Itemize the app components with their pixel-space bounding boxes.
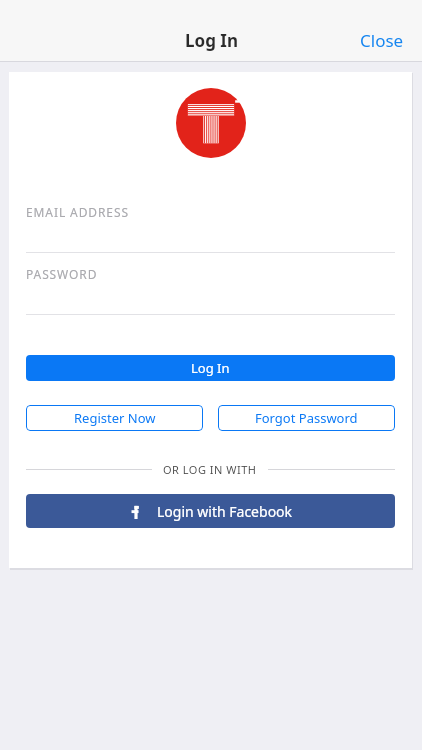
staticText: Register Now — [74, 409, 156, 427]
button[interactable]: Register Now — [26, 405, 203, 431]
button[interactable]: Forgot Password — [218, 405, 395, 431]
button[interactable]: PASSWORD — [9, 253, 412, 315]
staticText: OR LOG IN WITH — [163, 462, 257, 477]
button[interactable]: Log In — [26, 355, 395, 381]
staticText: EMAIL ADDRESS — [26, 204, 129, 220]
staticText: Log In — [191, 359, 230, 377]
button[interactable]: Login with Facebook — [26, 494, 395, 528]
button[interactable]: EMAIL ADDRESS — [9, 191, 412, 253]
staticText: Close — [360, 29, 404, 52]
button[interactable]: Close — [356, 25, 408, 56]
staticText: Log In — [185, 29, 238, 52]
staticText: PASSWORD — [26, 266, 98, 282]
staticText: Login with Facebook — [157, 502, 293, 521]
staticText: Forgot Password — [255, 409, 358, 427]
